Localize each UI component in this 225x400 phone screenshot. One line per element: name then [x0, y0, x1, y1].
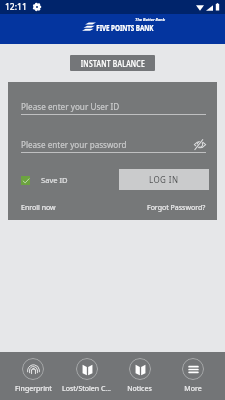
- staticText: Notices: [127, 384, 152, 394]
- staticText: FIVE POINTS BANK: [96, 22, 154, 33]
- staticText: INSTANT BALANCE: [81, 58, 145, 69]
- staticText: Lost/Stolen C...: [62, 384, 111, 394]
- button[interactable]: Notices: [113, 358, 166, 394]
- button[interactable]: More: [166, 358, 219, 394]
- staticText: More: [184, 384, 202, 394]
- button[interactable]: Show password: [194, 138, 206, 150]
- button[interactable]: Lost/Stolen C...: [60, 358, 113, 394]
- button[interactable]: INSTANT BALANCE: [70, 55, 155, 71]
- button[interactable]: Save ID: [21, 175, 68, 185]
- button[interactable]: Enroll now: [21, 203, 56, 213]
- staticText: LOG IN: [149, 174, 179, 185]
- button[interactable]: Fingerprint: [6, 358, 60, 394]
- staticText: 12:11: [5, 1, 27, 13]
- staticText: The Better Bank: [135, 17, 165, 23]
- button[interactable]: LOG IN: [119, 169, 209, 190]
- staticText: Please enter your User ID: [21, 100, 119, 112]
- staticText: Please enter your password: [21, 138, 127, 150]
- staticText: Save ID: [41, 175, 68, 185]
- staticText: Fingerprint: [15, 384, 52, 394]
- button[interactable]: Forgot Password?: [147, 203, 206, 213]
